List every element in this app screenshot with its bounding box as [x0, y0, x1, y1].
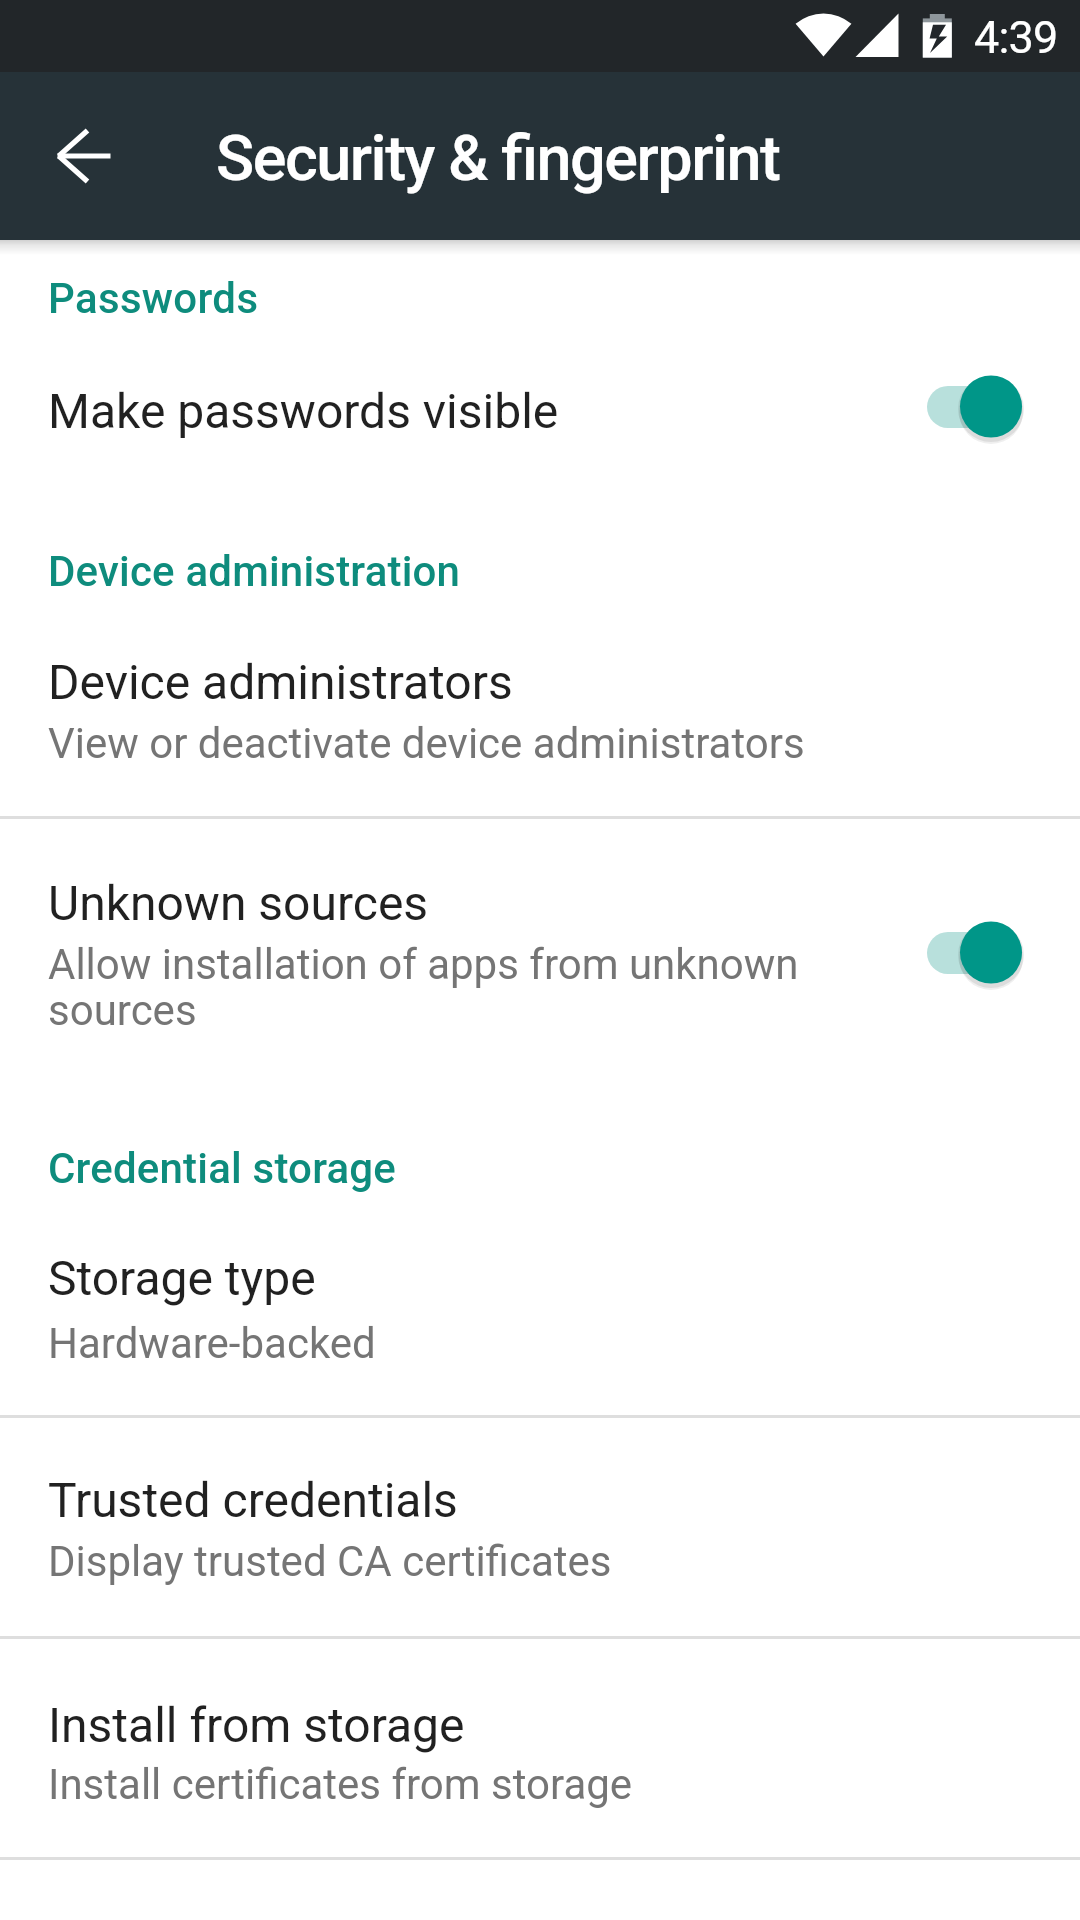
staticText: Device administrators [48, 654, 513, 710]
staticText: Passwords [48, 274, 259, 323]
button[interactable] [0, 1637, 1080, 1856]
button[interactable] [0, 340, 1080, 476]
staticText: Credential storage [48, 1144, 396, 1193]
button[interactable] [0, 819, 1080, 1059]
staticText: Display trusted CA certificates [48, 1537, 612, 1586]
staticText: Device administration [48, 547, 461, 596]
button[interactable] [0, 1222, 1080, 1414]
button[interactable] [0, 1417, 1080, 1634]
staticText: Storage type [48, 1250, 316, 1306]
staticText: Allow installation of apps from unknown … [48, 940, 848, 1036]
staticText: Install from storage [48, 1697, 465, 1753]
staticText: Security & fingerprint [216, 122, 780, 196]
staticText: Hardware-backed [48, 1319, 376, 1368]
staticText: View or deactivate device administrators [48, 719, 805, 768]
button[interactable]: Make passwords visible [907, 359, 1075, 455]
button[interactable] [0, 625, 1080, 815]
staticText: Unknown sources [48, 875, 429, 931]
staticText: Install certificates from storage [48, 1760, 633, 1809]
staticText: 4:39 [974, 11, 1058, 64]
button[interactable]: Unknown sources [907, 905, 1075, 1001]
staticText: Make passwords visible [48, 383, 559, 439]
staticText: Trusted credentials [48, 1472, 458, 1528]
button[interactable]: Navigate up [28, 100, 140, 212]
